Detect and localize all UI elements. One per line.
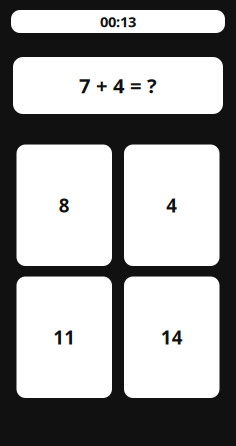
staticText: 7 + 4 = ? xyxy=(79,72,157,99)
button[interactable]: 11 xyxy=(16,276,112,398)
button[interactable]: 8 xyxy=(16,144,112,266)
staticText: 00:13 xyxy=(100,11,136,31)
staticText: 14 xyxy=(161,324,183,350)
staticText: 8 xyxy=(59,192,70,218)
button[interactable]: 4 xyxy=(124,144,219,266)
button[interactable]: 14 xyxy=(124,276,219,398)
staticText: 11 xyxy=(53,324,75,350)
staticText: 4 xyxy=(166,192,177,218)
